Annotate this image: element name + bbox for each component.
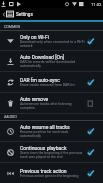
staticText: DAR.fm records will be downloaded automa…: [20, 60, 85, 68]
staticText: Settings: [16, 12, 33, 17]
staticText: #AUDIO: [4, 115, 17, 119]
staticText: Auto Download [On]: [20, 54, 65, 60]
staticText: Only on Wi-Fi: [20, 34, 49, 40]
button[interactable]: Navigate up: [0, 8, 6, 20]
staticText: Previous action goes to the beginning: [20, 174, 79, 178]
button[interactable]: Previous track action: [0, 163, 103, 183]
staticText: Download only when connected to a Wi-Fi …: [20, 40, 85, 48]
staticText: DAR fm auto-sync: [20, 77, 60, 83]
button[interactable]: Auto resume all tracks: [0, 121, 103, 142]
staticText: Auto resume all tracks: [20, 124, 70, 130]
button[interactable]: Auto remove: [0, 93, 103, 114]
staticText: 11:02: [91, 2, 102, 7]
staticText: Auto remove: [20, 96, 49, 102]
staticText: Previous track action: [20, 168, 67, 174]
staticText: Resume position for each track automatic…: [20, 130, 85, 138]
staticText: Autoremove tracks after listening comple…: [20, 102, 85, 110]
staticText: COMMON: [4, 25, 21, 29]
button[interactable]: Continuous playback: [0, 142, 103, 163]
button[interactable]: Only on Wi-Fi: [0, 31, 103, 51]
staticText: Continuous playback: [20, 145, 67, 151]
button[interactable]: DAR fm auto-sync: [0, 72, 103, 93]
button[interactable]: Auto Download [On]: [0, 51, 103, 72]
staticText: Starts from the beginning if the previou…: [20, 151, 85, 159]
staticText: Erase tracks removed from DAR.fm: [20, 83, 75, 87]
